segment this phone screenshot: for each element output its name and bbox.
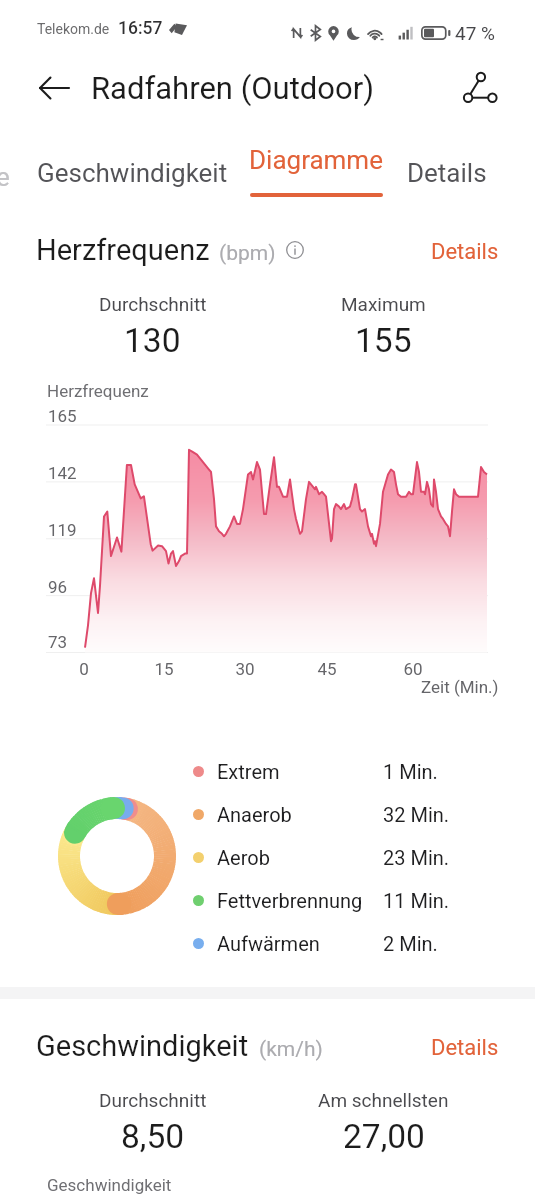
staticText: 96 [48, 577, 68, 597]
staticText: Anaerob [217, 803, 292, 826]
staticText: 1 Min. [383, 760, 438, 783]
button[interactable]: Back [31, 65, 77, 111]
staticText: 8,50 [121, 1117, 185, 1156]
button[interactable]: Extrem [193, 750, 493, 793]
staticText: 119 [48, 520, 77, 540]
button[interactable]: Info [280, 235, 309, 264]
staticText: 2 Min. [383, 932, 438, 955]
button[interactable]: Aerob [193, 836, 493, 879]
staticText: Herzfrequenz [36, 233, 210, 267]
staticText: 0 [69, 659, 99, 679]
staticText: (km/h) [259, 1037, 323, 1062]
button[interactable]: Anaerob [193, 793, 493, 836]
staticText: 47 % [455, 22, 495, 44]
staticText: Diagramme [249, 145, 383, 175]
button[interactable]: Details [421, 1025, 509, 1071]
staticText: Am schnellsten [318, 1089, 449, 1111]
staticText: Extrem [217, 760, 280, 783]
button[interactable]: Aufwärmen [193, 922, 493, 965]
staticText: Zeit (Min.) [421, 677, 499, 697]
staticText: (bpm) [219, 241, 276, 266]
staticText: Details [431, 1035, 499, 1061]
staticText: Aufwärmen [217, 932, 320, 955]
staticText: Durchschnitt [99, 293, 207, 315]
staticText: 45 [312, 659, 342, 679]
button[interactable]: Share [457, 65, 503, 111]
staticText: Aerob [217, 846, 270, 869]
staticText: Geschwindigkeit [47, 1175, 172, 1195]
staticText: 23 Min. [383, 846, 450, 869]
staticText: Geschwindigkeit [37, 158, 228, 188]
staticText: Details [431, 239, 499, 265]
staticText: Radfahren (Outdoor) [91, 70, 374, 106]
staticText: Geschwindigkeit [36, 1029, 249, 1063]
staticText: 60 [398, 659, 428, 679]
staticText: 130 [124, 321, 181, 360]
staticText: e [0, 162, 10, 192]
staticText: 73 [48, 632, 68, 652]
staticText: Maximum [341, 293, 426, 315]
button[interactable]: Details [395, 145, 499, 201]
button[interactable]: Details [421, 229, 509, 275]
button[interactable]: Fettverbrennung [193, 879, 493, 922]
staticText: 32 Min. [383, 803, 450, 826]
staticText: Details [407, 158, 487, 188]
staticText: Fettverbrennung [217, 889, 363, 912]
button[interactable]: Diagramme [237, 145, 395, 209]
staticText: 11 Min. [383, 889, 450, 912]
staticText: 16:57 [118, 18, 163, 39]
staticText: 30 [230, 659, 260, 679]
staticText: Durchschnitt [99, 1089, 207, 1111]
staticText: 27,00 [343, 1117, 425, 1156]
staticText: 155 [355, 321, 412, 360]
staticText: Telekom.de [37, 21, 110, 37]
staticText: Herzfrequenz [47, 381, 149, 401]
staticText: 165 [48, 406, 77, 426]
staticText: 15 [149, 659, 179, 679]
button[interactable]: Geschwindigkeit [25, 145, 240, 201]
staticText: 142 [48, 463, 77, 483]
